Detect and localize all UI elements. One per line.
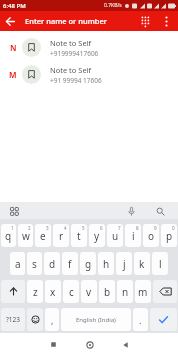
staticText: k — [139, 257, 145, 271]
button[interactable]: ?123 — [1, 308, 25, 331]
button[interactable] — [135, 11, 155, 31]
staticText: d — [49, 257, 56, 271]
staticText: 4 — [64, 225, 67, 231]
staticText: 9 — [154, 225, 157, 231]
staticText: l — [159, 257, 162, 271]
button[interactable] — [0, 11, 20, 31]
button[interactable]: t — [71, 224, 87, 247]
staticText: 0 — [172, 225, 175, 231]
button[interactable]: m — [135, 280, 151, 303]
button[interactable] — [125, 205, 137, 217]
button[interactable]: . — [133, 308, 148, 331]
staticText: a — [15, 257, 21, 271]
button[interactable]: l — [152, 252, 168, 275]
staticText: English (India) — [76, 316, 116, 324]
staticText: M — [9, 69, 17, 80]
button[interactable] — [82, 337, 97, 352]
button[interactable]: y — [89, 224, 105, 247]
staticText: w — [22, 229, 30, 243]
staticText: 7 — [118, 225, 121, 231]
staticText: i — [132, 229, 135, 243]
button[interactable] — [150, 308, 177, 331]
button[interactable]: n — [117, 280, 133, 303]
button[interactable]: g — [80, 252, 96, 275]
staticText: Note to Self — [50, 65, 92, 75]
staticText: 6:48 PM — [3, 2, 26, 10]
staticText: p — [166, 229, 173, 243]
staticText: s — [32, 257, 37, 271]
button[interactable]: , — [45, 308, 59, 331]
staticText: +91 99994 17606 — [50, 76, 102, 85]
staticText: 8 — [136, 225, 139, 231]
button[interactable]: j — [116, 252, 132, 275]
button[interactable]: w — [18, 224, 33, 247]
staticText: n — [122, 285, 129, 299]
button[interactable] — [118, 337, 133, 352]
staticText: 6 — [100, 225, 103, 231]
staticText: +919999417606 — [50, 49, 99, 58]
button[interactable]: o — [143, 224, 159, 247]
staticText: Note to Self — [50, 38, 92, 48]
button[interactable]: N — [0, 34, 178, 61]
button[interactable]: u — [107, 224, 123, 247]
button[interactable]: d — [44, 252, 60, 275]
button[interactable] — [1, 280, 25, 303]
staticText: b — [104, 285, 111, 299]
staticText: c — [69, 285, 74, 299]
button[interactable]: M — [0, 61, 178, 88]
button[interactable]: a — [10, 252, 25, 275]
button[interactable]: b — [99, 280, 115, 303]
staticText: ?123 — [6, 315, 20, 324]
staticText: v — [86, 285, 92, 299]
button[interactable] — [8, 205, 20, 217]
button[interactable]: f — [62, 252, 78, 275]
button[interactable]: x — [45, 280, 61, 303]
button[interactable] — [153, 280, 177, 303]
staticText: o — [148, 229, 155, 243]
staticText: j — [123, 257, 126, 271]
staticText: u — [112, 229, 119, 243]
staticText: t — [77, 229, 81, 243]
button[interactable]: s — [27, 252, 42, 275]
staticText: r — [59, 229, 64, 243]
button[interactable] — [158, 13, 175, 30]
staticText: x — [50, 285, 56, 299]
staticText: h — [103, 257, 110, 271]
staticText: f — [68, 257, 72, 271]
staticText: 5 — [82, 225, 85, 231]
staticText: 0.7KB/s — [104, 2, 122, 9]
staticText: 3 — [46, 225, 49, 231]
button[interactable]: i — [125, 224, 141, 247]
staticText: 1 — [11, 225, 14, 231]
staticText: e — [40, 229, 46, 243]
button[interactable]: r — [53, 224, 69, 247]
button[interactable]: q — [1, 224, 16, 247]
button[interactable] — [27, 308, 43, 331]
button[interactable]: c — [63, 280, 79, 303]
staticText: Enter name or number — [25, 16, 107, 26]
staticText: y — [94, 229, 100, 243]
staticText: m — [138, 285, 148, 299]
button[interactable]: h — [98, 252, 114, 275]
button[interactable]: v — [81, 280, 97, 303]
staticText: g — [85, 257, 92, 271]
button[interactable]: English (India) — [61, 308, 131, 331]
button[interactable] — [154, 205, 166, 217]
staticText: q — [5, 229, 12, 243]
button[interactable] — [46, 337, 61, 352]
staticText: 2 — [28, 225, 31, 231]
staticText: z — [33, 285, 38, 299]
button[interactable]: z — [27, 280, 43, 303]
staticText: . — [139, 314, 142, 326]
button[interactable]: p — [161, 224, 177, 247]
button[interactable]: k — [134, 252, 150, 275]
staticText: N — [10, 42, 17, 53]
button[interactable]: e — [35, 224, 51, 247]
staticText: , — [51, 314, 54, 326]
